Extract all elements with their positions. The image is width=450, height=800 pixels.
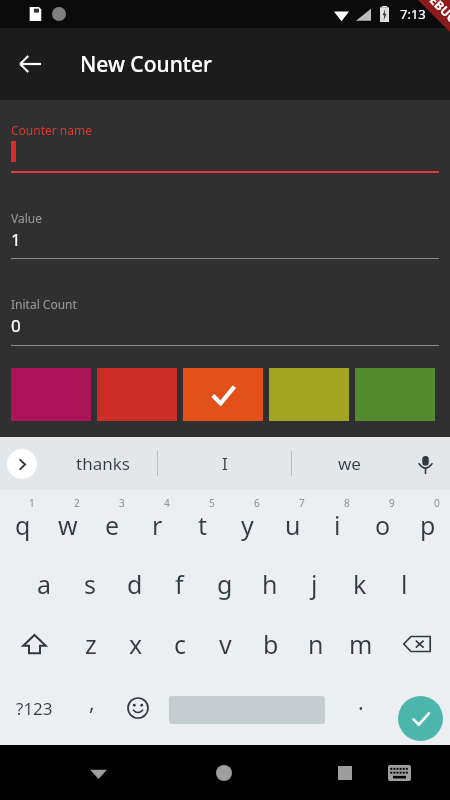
button[interactable]: I bbox=[160, 437, 290, 490]
button[interactable]: Backspace bbox=[383, 614, 450, 674]
button[interactable]: Color 3 bbox=[183, 368, 263, 421]
staticText: 0 bbox=[11, 314, 21, 337]
staticText: ?123 bbox=[16, 697, 53, 720]
staticText: t bbox=[198, 508, 208, 542]
button[interactable]: t bbox=[180, 490, 225, 554]
staticText: we bbox=[338, 452, 361, 475]
staticText: h bbox=[262, 567, 278, 601]
button[interactable]: y bbox=[225, 490, 270, 554]
staticText: r bbox=[152, 508, 163, 542]
button[interactable]: Voice input bbox=[408, 447, 442, 481]
button[interactable]: w bbox=[45, 490, 90, 554]
button[interactable]: r bbox=[135, 490, 180, 554]
button[interactable] bbox=[0, 286, 450, 346]
staticText: s bbox=[84, 567, 96, 601]
button[interactable]: f bbox=[157, 554, 202, 614]
button[interactable]: m bbox=[338, 614, 383, 674]
staticText: f bbox=[175, 567, 184, 601]
staticText: Value bbox=[11, 210, 42, 226]
button[interactable]: s bbox=[67, 554, 112, 614]
staticText: 6 bbox=[254, 496, 260, 510]
staticText: Counter name bbox=[11, 122, 92, 138]
staticText: u bbox=[285, 508, 301, 542]
staticText: I bbox=[222, 452, 228, 475]
staticText: 3 bbox=[119, 496, 125, 510]
button[interactable]: . bbox=[336, 674, 386, 742]
button[interactable]: z bbox=[68, 614, 113, 674]
staticText: b bbox=[263, 627, 279, 661]
button[interactable]: Recents bbox=[327, 755, 363, 791]
staticText: x bbox=[129, 627, 143, 661]
button[interactable] bbox=[0, 110, 450, 180]
staticText: New Counter bbox=[80, 50, 212, 79]
staticText: 1 bbox=[11, 228, 21, 251]
button[interactable]: b bbox=[248, 614, 293, 674]
staticText: n bbox=[308, 627, 324, 661]
button[interactable]: More suggestions bbox=[7, 449, 37, 479]
button[interactable]: u bbox=[270, 490, 315, 554]
button[interactable]: a bbox=[22, 554, 67, 614]
staticText: z bbox=[85, 627, 97, 661]
staticText: l bbox=[401, 567, 408, 601]
button[interactable]: Hide keyboard bbox=[80, 755, 116, 791]
button[interactable]: o bbox=[360, 490, 405, 554]
staticText: y bbox=[241, 508, 254, 542]
button[interactable]: i bbox=[315, 490, 360, 554]
button[interactable]: g bbox=[202, 554, 247, 614]
button[interactable]: Emoji bbox=[116, 674, 160, 742]
button[interactable]: ?123 bbox=[0, 674, 68, 742]
button[interactable]: l bbox=[382, 554, 427, 614]
button[interactable]: Enter bbox=[398, 696, 443, 741]
staticText: 2 bbox=[74, 496, 80, 510]
button[interactable]: d bbox=[112, 554, 157, 614]
staticText: thanks bbox=[76, 452, 130, 475]
button[interactable]: , bbox=[72, 674, 112, 742]
button[interactable]: Back bbox=[12, 46, 48, 82]
staticText: w bbox=[58, 508, 78, 542]
staticText: 1 bbox=[29, 496, 35, 510]
staticText: m bbox=[349, 627, 373, 661]
staticText: e bbox=[105, 508, 120, 542]
staticText: o bbox=[375, 508, 391, 542]
staticText: c bbox=[174, 627, 187, 661]
button[interactable]: h bbox=[247, 554, 292, 614]
staticText: j bbox=[311, 567, 318, 601]
staticText: v bbox=[219, 627, 232, 661]
staticText: 4 bbox=[164, 496, 170, 510]
button[interactable]: v bbox=[203, 614, 248, 674]
staticText: 7 bbox=[299, 496, 305, 510]
staticText: g bbox=[217, 567, 233, 601]
button[interactable]: e bbox=[90, 490, 135, 554]
button[interactable]: c bbox=[158, 614, 203, 674]
staticText: 7:13 bbox=[400, 5, 426, 23]
staticText: , bbox=[89, 688, 95, 717]
button[interactable]: k bbox=[337, 554, 382, 614]
button[interactable]: p bbox=[405, 490, 450, 554]
button[interactable]: Keyboard active bbox=[382, 756, 416, 790]
staticText: DEBUG bbox=[420, 0, 450, 26]
staticText: q bbox=[15, 508, 31, 542]
staticText: . bbox=[358, 688, 364, 717]
button[interactable]: j bbox=[292, 554, 337, 614]
button[interactable]: thanks bbox=[50, 437, 155, 490]
button[interactable]: q bbox=[0, 490, 45, 554]
button[interactable]: we bbox=[294, 437, 404, 490]
staticText: 9 bbox=[389, 496, 395, 510]
button[interactable]: n bbox=[293, 614, 338, 674]
button[interactable] bbox=[0, 200, 450, 260]
staticText: d bbox=[127, 567, 143, 601]
staticText: 8 bbox=[344, 496, 350, 510]
staticText: k bbox=[353, 567, 367, 601]
staticText: p bbox=[420, 508, 436, 542]
staticText: 0 bbox=[434, 496, 440, 510]
button[interactable]: Home bbox=[206, 755, 242, 791]
staticText: Inital Count bbox=[11, 296, 77, 312]
button[interactable]: x bbox=[113, 614, 158, 674]
button[interactable]: Shift bbox=[0, 614, 68, 674]
staticText: i bbox=[334, 508, 341, 542]
